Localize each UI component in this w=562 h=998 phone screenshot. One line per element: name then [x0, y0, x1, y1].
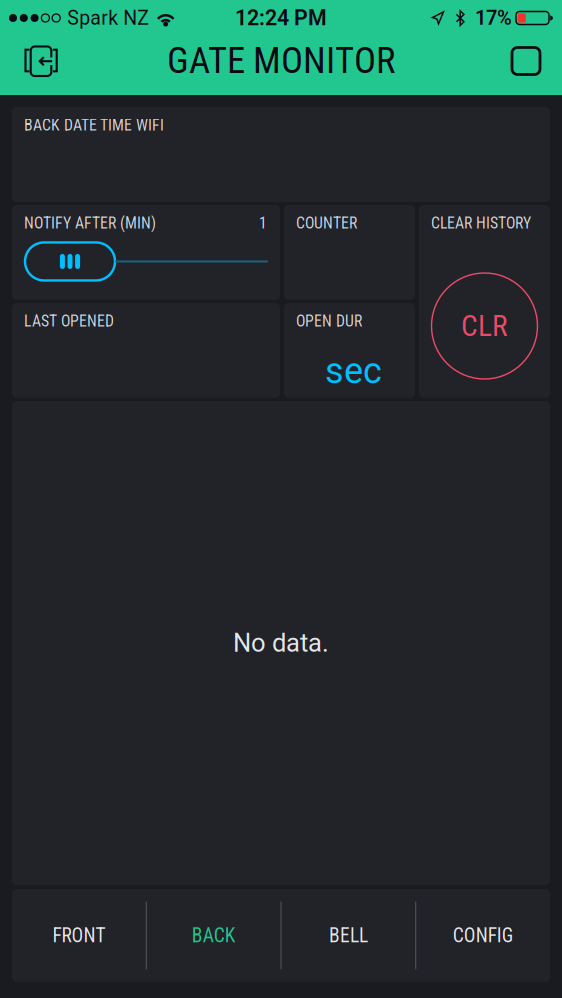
staticText: LAST OPENED [24, 312, 114, 330]
staticText: FRONT [52, 924, 105, 947]
staticText: sec [325, 350, 382, 392]
button[interactable]: Back [6, 36, 76, 95]
staticText: BELL [329, 924, 368, 947]
staticText: GATE MONITOR [167, 39, 395, 82]
staticText: CLEAR HISTORY [431, 214, 531, 232]
staticText: 12:24 PM [235, 5, 327, 30]
staticText: No data. [233, 628, 329, 658]
button[interactable]: BELL [281, 889, 415, 982]
staticText: OPEN DUR [296, 312, 362, 330]
staticText: 17% [475, 6, 512, 30]
staticText: CLR [461, 309, 508, 343]
staticText: Spark NZ [67, 7, 149, 29]
button[interactable]: BACK [147, 889, 281, 982]
staticText: 1 [259, 214, 267, 232]
button[interactable]: CONFIG [416, 889, 550, 982]
staticText: COUNTER [296, 214, 357, 232]
button[interactable]: FRONT [12, 889, 146, 982]
button[interactable]: Clear history [431, 273, 537, 379]
staticText: CONFIG [453, 924, 514, 947]
button[interactable]: Stop [500, 36, 552, 95]
staticText: BACK [192, 924, 236, 947]
staticText: NOTIFY AFTER (MIN) [24, 214, 156, 232]
staticText: BACK DATE TIME WIFI [24, 116, 164, 134]
